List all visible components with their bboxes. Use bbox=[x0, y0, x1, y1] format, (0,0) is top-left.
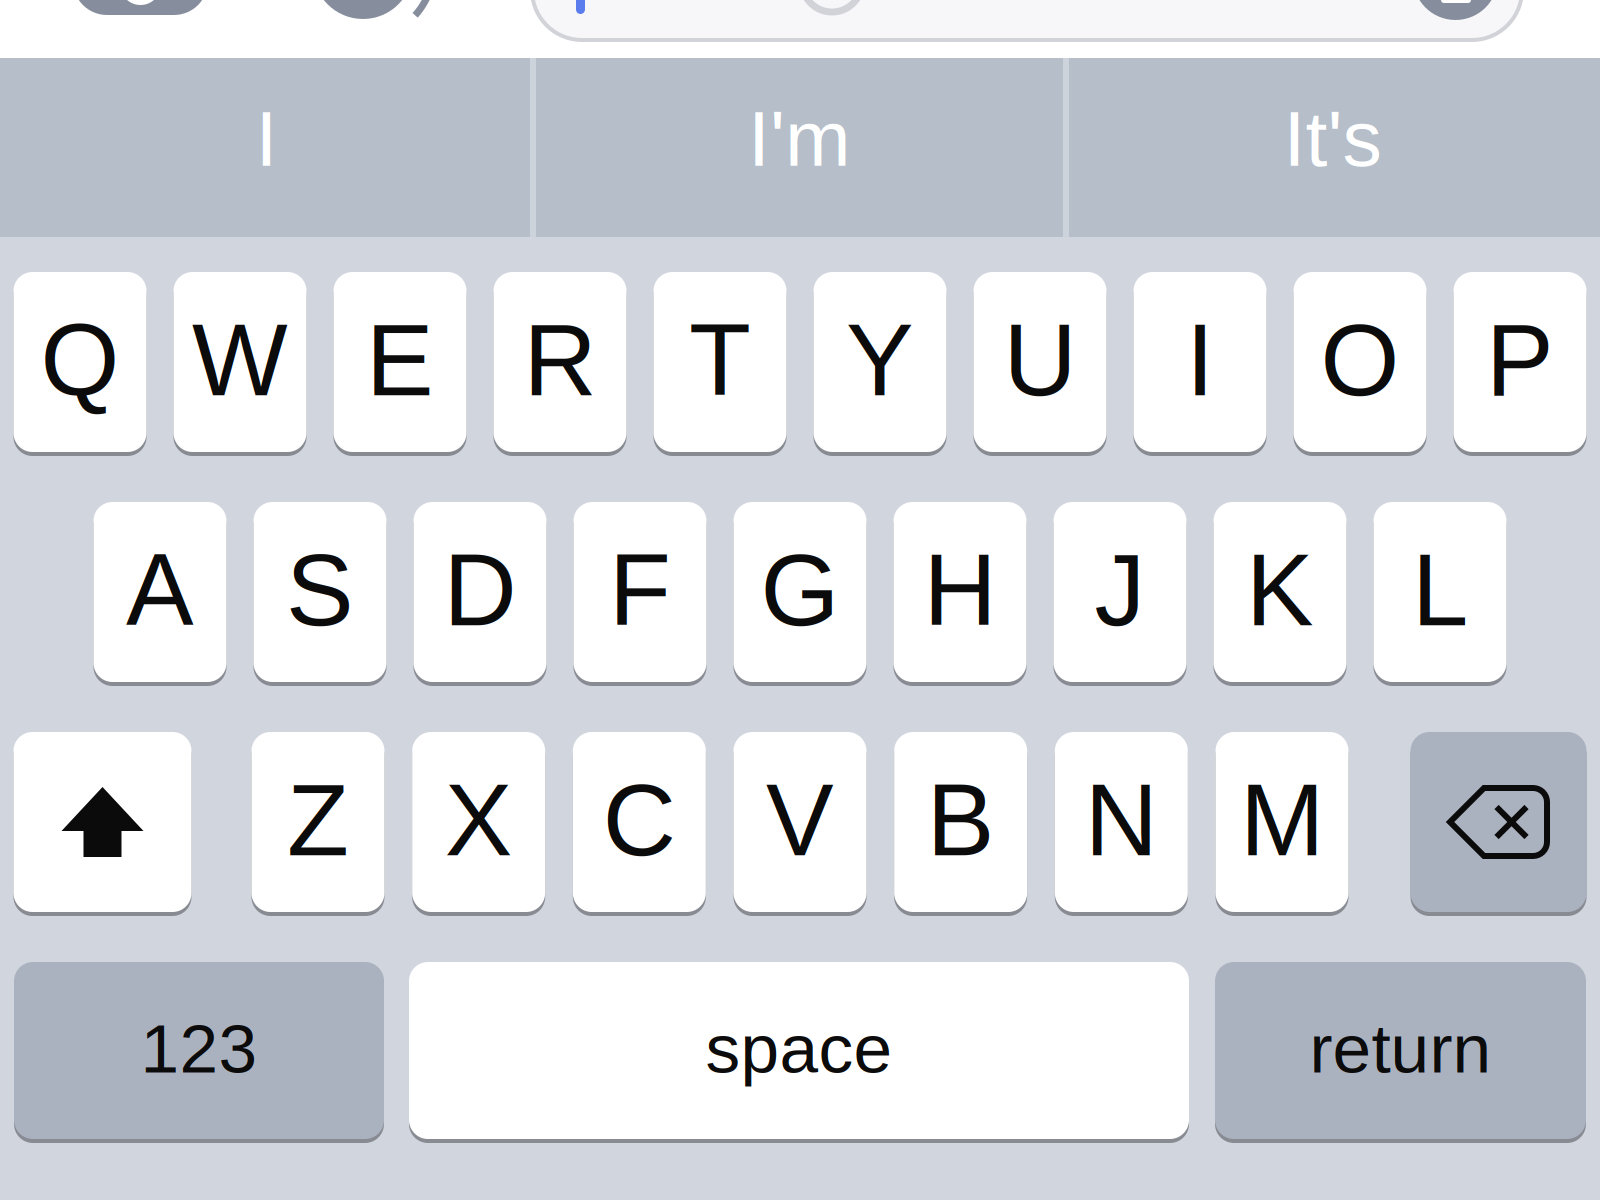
button[interactable]: C bbox=[573, 732, 706, 916]
staticText: 123 bbox=[140, 1010, 257, 1087]
staticText: It's bbox=[1283, 95, 1381, 182]
button[interactable]: Apps bbox=[0, 0, 180, 58]
button[interactable]: T bbox=[653, 272, 786, 456]
button[interactable]: K bbox=[1213, 502, 1346, 686]
staticText: B bbox=[927, 763, 995, 877]
button[interactable]: H bbox=[893, 502, 1026, 686]
staticText: W bbox=[192, 303, 288, 417]
button[interactable]: R bbox=[493, 272, 626, 456]
staticText: C bbox=[603, 763, 676, 877]
staticText: K bbox=[1246, 533, 1314, 647]
button[interactable]: P bbox=[1453, 272, 1586, 456]
staticText: return bbox=[1309, 1010, 1491, 1087]
button[interactable]: A bbox=[93, 502, 226, 686]
button[interactable]: It's bbox=[1066, 58, 1599, 237]
button[interactable]: N bbox=[1055, 732, 1188, 916]
staticText: I bbox=[1186, 303, 1214, 417]
staticText: L bbox=[1412, 533, 1468, 647]
button[interactable]: I bbox=[1133, 272, 1266, 456]
staticText: V bbox=[766, 763, 834, 877]
button[interactable]: I bbox=[0, 58, 533, 237]
button[interactable]: S bbox=[253, 502, 386, 686]
button[interactable]: L bbox=[1373, 502, 1506, 686]
button[interactable]: F bbox=[573, 502, 706, 686]
button[interactable]: Q bbox=[13, 272, 146, 456]
staticText: I'm bbox=[748, 95, 851, 182]
button[interactable]: G bbox=[733, 502, 866, 686]
button[interactable]: return bbox=[1215, 962, 1586, 1143]
staticText: P bbox=[1486, 303, 1554, 417]
staticText: X bbox=[445, 763, 513, 877]
staticText: G bbox=[760, 533, 839, 647]
staticText: F bbox=[609, 533, 671, 647]
staticText: E bbox=[366, 303, 434, 417]
staticText: I bbox=[255, 95, 277, 182]
button[interactable]: B bbox=[894, 732, 1027, 916]
button[interactable]: D bbox=[413, 502, 546, 686]
staticText: O bbox=[1320, 303, 1399, 417]
staticText: A bbox=[126, 533, 194, 647]
button[interactable]: X bbox=[412, 732, 545, 916]
button[interactable]: E bbox=[333, 272, 466, 456]
button[interactable]: U bbox=[973, 272, 1106, 456]
button[interactable]: Camera bbox=[0, 0, 220, 58]
button[interactable]: J bbox=[1053, 502, 1186, 686]
staticText: H bbox=[923, 533, 996, 647]
staticText: J bbox=[1094, 533, 1145, 647]
staticText: R bbox=[523, 303, 596, 417]
staticText: S bbox=[286, 533, 354, 647]
staticText: D bbox=[443, 533, 516, 647]
staticText: Z bbox=[287, 763, 349, 877]
button[interactable]: W bbox=[173, 272, 306, 456]
button[interactable]: I'm bbox=[533, 58, 1066, 237]
staticText: Q bbox=[40, 303, 119, 417]
staticText: Y bbox=[846, 303, 914, 417]
button[interactable]: Shift bbox=[13, 732, 191, 916]
staticText: U bbox=[1003, 303, 1076, 417]
staticText: N bbox=[1085, 763, 1158, 877]
button[interactable]: Y bbox=[813, 272, 946, 456]
button[interactable]: V bbox=[733, 732, 866, 916]
staticText: T bbox=[689, 303, 751, 417]
button[interactable]: Send bbox=[0, 0, 180, 58]
button[interactable]: Z bbox=[251, 732, 384, 916]
button[interactable]: O bbox=[1293, 272, 1426, 456]
button[interactable]: 123 bbox=[14, 962, 384, 1143]
button[interactable]: M bbox=[1215, 732, 1348, 916]
button[interactable]: Delete bbox=[1410, 732, 1586, 916]
staticText: M bbox=[1240, 763, 1324, 877]
staticText: space bbox=[705, 1010, 892, 1087]
button[interactable]: space bbox=[409, 962, 1189, 1143]
